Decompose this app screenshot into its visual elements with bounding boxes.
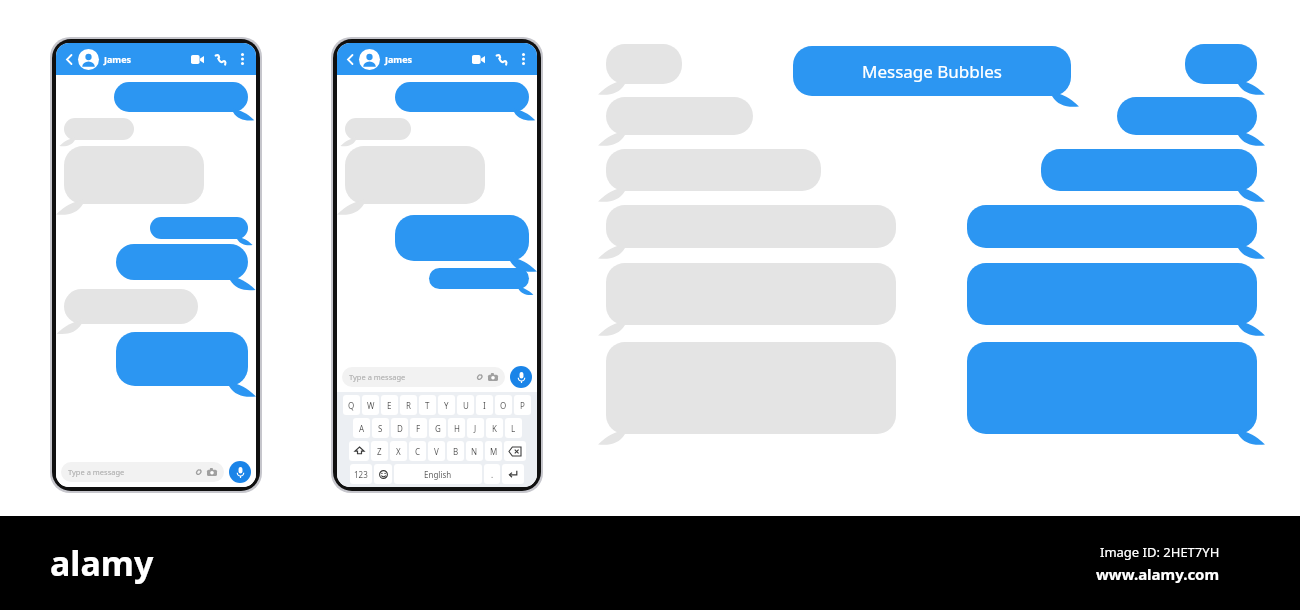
button[interactable]: Type a message <box>61 462 224 482</box>
button[interactable]: P <box>514 395 531 415</box>
button[interactable]: Voice message <box>510 366 532 388</box>
button[interactable]: Q <box>343 395 360 415</box>
button[interactable]: E <box>381 395 398 415</box>
staticText: N <box>471 446 478 457</box>
button[interactable]: N <box>466 441 483 461</box>
staticText: S <box>378 423 383 434</box>
button[interactable] <box>150 217 248 239</box>
staticText: I <box>483 400 486 411</box>
staticText: F <box>416 423 421 434</box>
button[interactable]: Video call <box>470 51 486 67</box>
button[interactable]: Video call <box>189 51 205 67</box>
staticText: M <box>490 446 498 457</box>
button[interactable] <box>606 205 896 248</box>
button[interactable] <box>64 146 204 204</box>
staticText: Q <box>348 400 355 411</box>
button[interactable] <box>116 332 248 386</box>
button[interactable]: Call <box>493 51 509 67</box>
staticText: U <box>463 400 469 411</box>
button[interactable]: K <box>486 418 503 438</box>
staticText: J <box>474 423 477 434</box>
button[interactable] <box>606 263 896 325</box>
staticText: Type a message <box>68 467 125 477</box>
button[interactable] <box>349 441 369 461</box>
button[interactable] <box>64 118 134 140</box>
button[interactable] <box>606 97 753 135</box>
button[interactable] <box>967 263 1257 325</box>
button[interactable] <box>967 342 1257 434</box>
button[interactable]: Z <box>371 441 388 461</box>
staticText: R <box>406 400 411 411</box>
button[interactable]: F <box>410 418 427 438</box>
staticText: K <box>492 423 497 434</box>
button[interactable]: A <box>353 418 370 438</box>
button[interactable] <box>64 289 198 324</box>
button[interactable]: More options <box>516 52 530 66</box>
button[interactable]: B <box>447 441 464 461</box>
button[interactable]: G <box>429 418 446 438</box>
button[interactable]: L <box>505 418 522 438</box>
button[interactable] <box>502 464 524 484</box>
button[interactable] <box>1041 149 1257 191</box>
button[interactable]: D <box>391 418 408 438</box>
button[interactable]: C <box>409 441 426 461</box>
button[interactable] <box>606 44 682 84</box>
staticText: Z <box>377 446 382 457</box>
button[interactable] <box>1117 97 1257 135</box>
staticText: O <box>500 400 507 411</box>
staticText: James <box>385 53 413 65</box>
staticText: L <box>511 423 516 434</box>
button[interactable] <box>967 205 1257 248</box>
staticText: P <box>520 400 525 411</box>
button[interactable] <box>116 244 248 280</box>
staticText: D <box>397 423 403 434</box>
button[interactable] <box>374 464 392 484</box>
button[interactable]: J <box>467 418 484 438</box>
button[interactable] <box>504 441 526 461</box>
button[interactable]: English <box>394 464 482 484</box>
staticText: G <box>435 423 441 434</box>
button[interactable]: W <box>362 395 379 415</box>
staticText: C <box>415 446 421 457</box>
button[interactable]: U <box>457 395 474 415</box>
staticText: James <box>104 53 132 65</box>
staticText: English <box>424 469 452 480</box>
button[interactable]: R <box>400 395 417 415</box>
staticText: B <box>453 446 459 457</box>
staticText: W <box>367 400 375 411</box>
staticText: . <box>491 469 494 480</box>
button[interactable] <box>1185 44 1257 84</box>
button[interactable]: S <box>372 418 389 438</box>
button[interactable] <box>395 215 529 261</box>
button[interactable]: 123 <box>350 464 372 484</box>
staticText: alamy <box>50 540 154 586</box>
staticText: T <box>425 400 430 411</box>
button[interactable]: T <box>419 395 436 415</box>
button[interactable]: O <box>495 395 512 415</box>
button[interactable]: H <box>448 418 465 438</box>
button[interactable]: Back <box>343 52 357 66</box>
staticText: Image ID: 2HET7YH <box>1100 543 1220 561</box>
button[interactable]: I <box>476 395 493 415</box>
button[interactable]: Call <box>212 51 228 67</box>
button[interactable] <box>395 82 529 112</box>
button[interactable]: Message Bubbles <box>793 46 1071 96</box>
staticText: X <box>396 446 401 457</box>
button[interactable]: X <box>390 441 407 461</box>
staticText: E <box>387 400 392 411</box>
button[interactable] <box>345 146 485 204</box>
button[interactable] <box>114 82 248 112</box>
button[interactable] <box>429 268 529 289</box>
button[interactable]: Type a message <box>342 367 505 387</box>
button[interactable]: More options <box>235 52 249 66</box>
button[interactable]: Voice message <box>229 461 251 483</box>
button[interactable] <box>606 149 821 191</box>
button[interactable]: Back <box>62 52 76 66</box>
staticText: Y <box>444 400 449 411</box>
button[interactable]: M <box>485 441 502 461</box>
button[interactable]: Y <box>438 395 455 415</box>
button[interactable] <box>345 118 411 140</box>
button[interactable]: V <box>428 441 445 461</box>
button[interactable]: . <box>484 464 500 484</box>
